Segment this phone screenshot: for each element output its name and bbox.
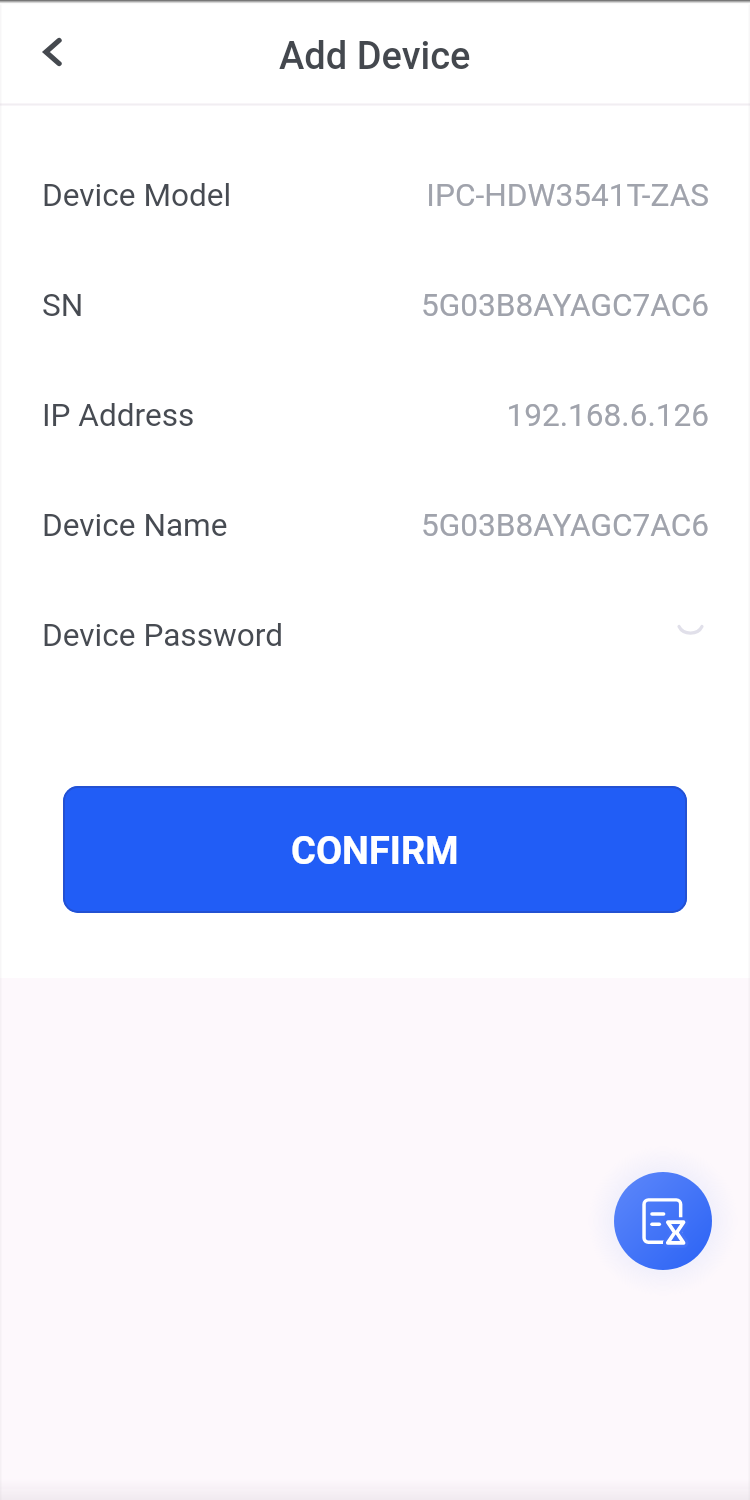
- button[interactable]: SN: [0, 250, 750, 360]
- staticText: Device Name: [42, 507, 228, 544]
- staticText: 5G03B8AYAGC7AC6: [421, 507, 709, 544]
- staticText: Add Device: [279, 34, 471, 79]
- button[interactable]: CONFIRM: [63, 786, 687, 913]
- button[interactable]: Back: [20, 19, 86, 85]
- button[interactable]: Device Model: [0, 140, 750, 250]
- staticText: Device Model: [42, 177, 232, 214]
- staticText: 5G03B8AYAGC7AC6: [421, 287, 709, 324]
- staticText: Device Password: [42, 617, 283, 654]
- button[interactable]: IP Address: [0, 360, 750, 470]
- button[interactable]: Show password: [668, 608, 712, 652]
- button[interactable]: Device Name: [0, 470, 750, 580]
- staticText: CONFIRM: [291, 829, 459, 874]
- button[interactable]: Device Password: [0, 580, 750, 690]
- staticText: IP Address: [42, 397, 195, 434]
- staticText: 192.168.6.126: [506, 397, 709, 434]
- staticText: SN: [42, 287, 84, 324]
- staticText: IPC-HDW3541T-ZAS: [426, 177, 709, 214]
- button[interactable]: Device tasks: [614, 1172, 712, 1270]
